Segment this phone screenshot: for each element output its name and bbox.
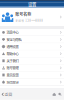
button[interactable]: 安全与隐私	[0, 36, 64, 43]
staticText: 账号名称	[15, 11, 31, 17]
button[interactable]: Search	[58, 89, 62, 100]
staticText: 返回	[4, 92, 12, 97]
staticText: 通用设置	[6, 44, 18, 49]
staticText: 意见反馈	[6, 73, 18, 77]
button[interactable]: 返回	[0, 89, 14, 100]
button[interactable]: 账号名称	[0, 8, 64, 26]
button[interactable]: 意见反馈	[0, 72, 64, 79]
button[interactable]: Home	[52, 89, 56, 100]
button[interactable]: 退出登录	[0, 79, 64, 86]
button[interactable]: 消息中心	[0, 29, 64, 36]
button[interactable]: 帮助中心	[0, 50, 64, 57]
staticText: 安全与隐私	[6, 37, 21, 42]
button[interactable]: 通用设置	[0, 43, 64, 50]
staticText: 手机号 138****8888	[15, 19, 43, 23]
button[interactable]: 关于我们	[0, 57, 64, 64]
button[interactable]: 账号管理	[0, 64, 64, 72]
staticText: 账号管理	[6, 65, 18, 70]
staticText: 帮助中心	[6, 51, 18, 56]
staticText: 退出登录	[6, 80, 18, 84]
staticText: 消息中心	[6, 30, 18, 35]
staticText: 设置	[28, 1, 36, 7]
staticText: 关于我们	[6, 58, 18, 63]
